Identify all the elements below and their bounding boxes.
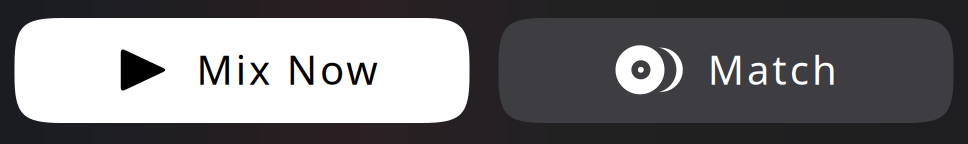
button[interactable]: Match [498,18,953,123]
button[interactable]: Mix Now [14,18,469,123]
staticText: Mix Now [196,43,377,96]
staticText: Match [708,43,837,96]
